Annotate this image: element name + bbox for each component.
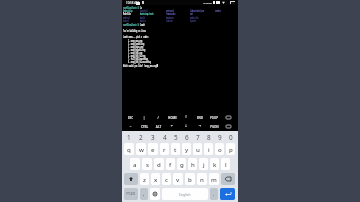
button[interactable]: | bbox=[137, 113, 151, 121]
staticText: | bbox=[143, 115, 145, 120]
staticText: android bbox=[123, 16, 130, 19]
button[interactable]: PGUP bbox=[207, 113, 221, 121]
button[interactable]: r bbox=[160, 143, 169, 155]
button[interactable]: HOME bbox=[165, 113, 179, 121]
button[interactable]: u bbox=[193, 143, 202, 155]
button[interactable]: 4 bbox=[159, 132, 170, 143]
staticText: 5 bbox=[174, 133, 178, 142]
button[interactable]: m bbox=[209, 173, 219, 185]
button[interactable]: s bbox=[142, 158, 152, 170]
staticText: PGUP bbox=[210, 115, 218, 120]
button[interactable]: e bbox=[148, 143, 158, 155]
staticText: 5. aosp_x86-eng bbox=[128, 51, 143, 54]
staticText: r bbox=[163, 145, 166, 153]
button[interactable]: z bbox=[140, 173, 149, 185]
button[interactable]: k bbox=[210, 158, 219, 170]
staticText: 4 bbox=[163, 133, 167, 142]
button[interactable]: d bbox=[154, 158, 164, 170]
staticText: / bbox=[157, 115, 159, 120]
staticText: bootable bbox=[140, 9, 148, 12]
button[interactable]: ALT bbox=[151, 122, 165, 130]
staticText: Lunch menu... pick a combo: bbox=[123, 35, 149, 38]
button[interactable]: PGDN bbox=[207, 122, 221, 130]
button[interactable]: 0 bbox=[225, 132, 236, 143]
button[interactable]: Keyboard bbox=[221, 122, 235, 130]
staticText: 7 bbox=[196, 133, 200, 142]
button[interactable]: 3 bbox=[147, 132, 159, 143]
button[interactable]: Shift bbox=[124, 173, 138, 185]
button[interactable]: ← bbox=[165, 122, 179, 130]
button[interactable]: n bbox=[197, 173, 207, 185]
button[interactable]: b bbox=[185, 173, 195, 185]
button[interactable]: ?123 bbox=[124, 188, 138, 200]
button[interactable]: ↓ bbox=[179, 122, 193, 130]
button[interactable]: English bbox=[162, 188, 208, 200]
button[interactable]: CTRL bbox=[137, 122, 151, 130]
button[interactable]: ↑ bbox=[179, 113, 193, 121]
staticText: z bbox=[143, 175, 146, 183]
staticText: You're building on Linux bbox=[123, 29, 146, 32]
button[interactable]: t bbox=[171, 143, 180, 155]
staticText: h bbox=[191, 160, 195, 168]
staticText: ↓ bbox=[184, 124, 188, 128]
staticText: j bbox=[203, 160, 205, 168]
button[interactable]: v bbox=[173, 173, 183, 185]
button[interactable]: 1 bbox=[123, 132, 135, 143]
staticText: Which would you like? [aosp_arm-eng] bbox=[123, 64, 158, 67]
button[interactable]: w bbox=[136, 143, 146, 155]
button[interactable]: o bbox=[215, 143, 224, 155]
button[interactable]: q bbox=[124, 143, 134, 155]
button[interactable]: 6 bbox=[181, 132, 192, 143]
staticText: root@localhost:/# bbox=[123, 23, 139, 26]
button[interactable]: Backspace bbox=[221, 173, 235, 185]
staticText: device bbox=[140, 19, 146, 22]
staticText: PGDN bbox=[210, 124, 219, 129]
staticText: → bbox=[198, 124, 202, 128]
staticText: ~ bbox=[129, 124, 132, 129]
button[interactable]: j bbox=[199, 158, 208, 170]
button[interactable]: y bbox=[182, 143, 191, 155]
staticText: bootstrap.bash bbox=[140, 12, 154, 15]
button[interactable]: → bbox=[193, 122, 207, 130]
staticText: system bbox=[190, 19, 196, 22]
staticText: vendor bbox=[215, 9, 221, 12]
button[interactable]: ESC bbox=[123, 113, 137, 121]
button[interactable]: 5 bbox=[170, 132, 181, 143]
button[interactable]: ~ bbox=[123, 122, 137, 130]
button[interactable]: l bbox=[221, 158, 230, 170]
staticText: build bbox=[140, 16, 145, 19]
button[interactable]: i bbox=[204, 143, 213, 155]
button[interactable]: f bbox=[166, 158, 175, 170]
button[interactable]: 8 bbox=[203, 132, 214, 143]
staticText: u bbox=[196, 145, 200, 153]
button[interactable]: Emoji bbox=[150, 188, 160, 200]
button[interactable]: 9 bbox=[214, 132, 225, 143]
staticText: 3 bbox=[151, 133, 155, 142]
button[interactable]: Enter bbox=[220, 188, 235, 200]
staticText: root@localhost:/# bbox=[123, 6, 139, 9]
button[interactable]: / bbox=[151, 113, 165, 121]
button[interactable]: END bbox=[193, 113, 207, 121]
staticText: c bbox=[165, 175, 168, 183]
staticText: END bbox=[197, 115, 203, 120]
staticText: libcore bbox=[166, 19, 173, 22]
staticText: prebuilts bbox=[190, 16, 199, 19]
button[interactable]: p bbox=[226, 143, 235, 155]
staticText: d bbox=[157, 160, 161, 168]
staticText: v bbox=[176, 175, 180, 183]
staticText: a bbox=[133, 160, 137, 168]
staticText: k bbox=[213, 160, 217, 168]
button[interactable]: 7 bbox=[192, 132, 203, 143]
button[interactable]: Keyboard bbox=[221, 113, 235, 121]
button[interactable]: x bbox=[151, 173, 160, 185]
button[interactable]: g bbox=[177, 158, 186, 170]
staticText: Android.bp bbox=[123, 9, 133, 12]
button[interactable]: 2 bbox=[135, 132, 147, 143]
button[interactable]: a bbox=[130, 158, 140, 170]
button[interactable]: c bbox=[162, 173, 171, 185]
staticText: 7. full_x86-userdebug bbox=[128, 57, 148, 60]
button[interactable]: , bbox=[140, 188, 148, 200]
button[interactable]: h bbox=[188, 158, 197, 170]
staticText: , bbox=[143, 191, 145, 198]
button[interactable]: . bbox=[210, 188, 218, 200]
